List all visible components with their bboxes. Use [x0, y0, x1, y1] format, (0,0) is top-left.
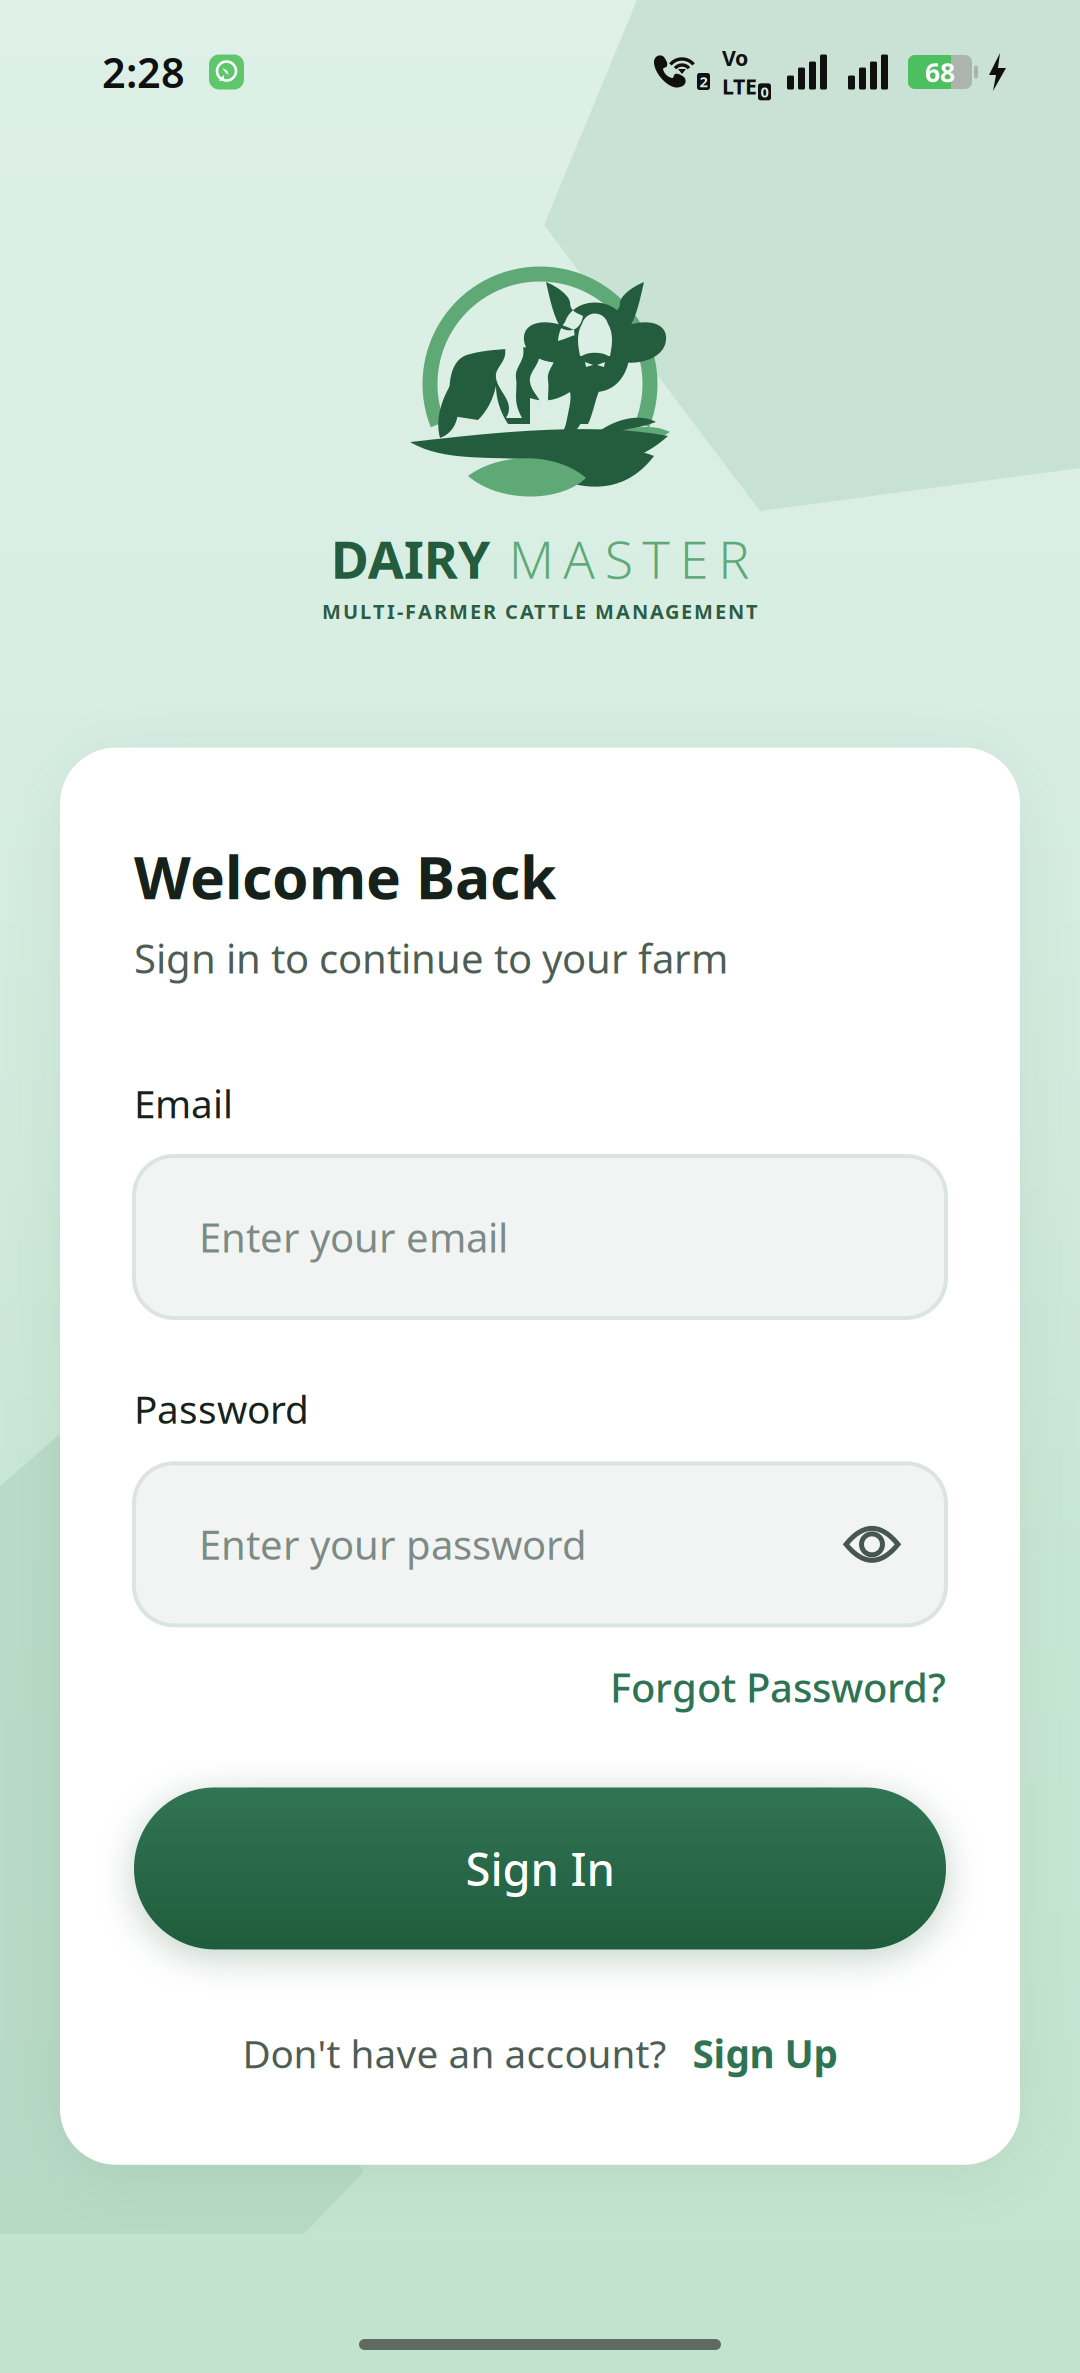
staticText: 2	[699, 72, 707, 91]
button[interactable]: Forgot Password?	[134, 1660, 946, 1713]
staticText: 68	[925, 54, 955, 90]
staticText: Sign In	[465, 1838, 614, 1899]
staticText: 0	[760, 82, 768, 102]
staticText: Don't have an account?	[242, 2027, 666, 2079]
staticText: Sign in to continue to your farm	[134, 931, 728, 985]
staticText: Enter your email	[199, 1210, 508, 1263]
button[interactable]: Show password	[844, 1525, 900, 1563]
staticText: MASTER	[509, 524, 749, 593]
staticText: Forgot Password?	[610, 1660, 946, 1713]
staticText: Vo	[722, 44, 748, 72]
staticText: Password	[134, 1383, 309, 1434]
staticText: Enter your password	[199, 1518, 587, 1571]
staticText: LTE	[722, 72, 757, 100]
button[interactable]: Sign Up	[692, 2027, 837, 2079]
button[interactable]: Sign In	[134, 1787, 946, 1949]
staticText: MULTI-FARMER CATTLE MANAGEMENT	[322, 598, 758, 625]
staticText: DAIRY	[331, 524, 491, 593]
staticText: Email	[134, 1078, 233, 1129]
staticText: Sign Up	[692, 2027, 837, 2079]
staticText: Welcome Back	[134, 838, 556, 915]
staticText: 2:28	[102, 45, 185, 99]
